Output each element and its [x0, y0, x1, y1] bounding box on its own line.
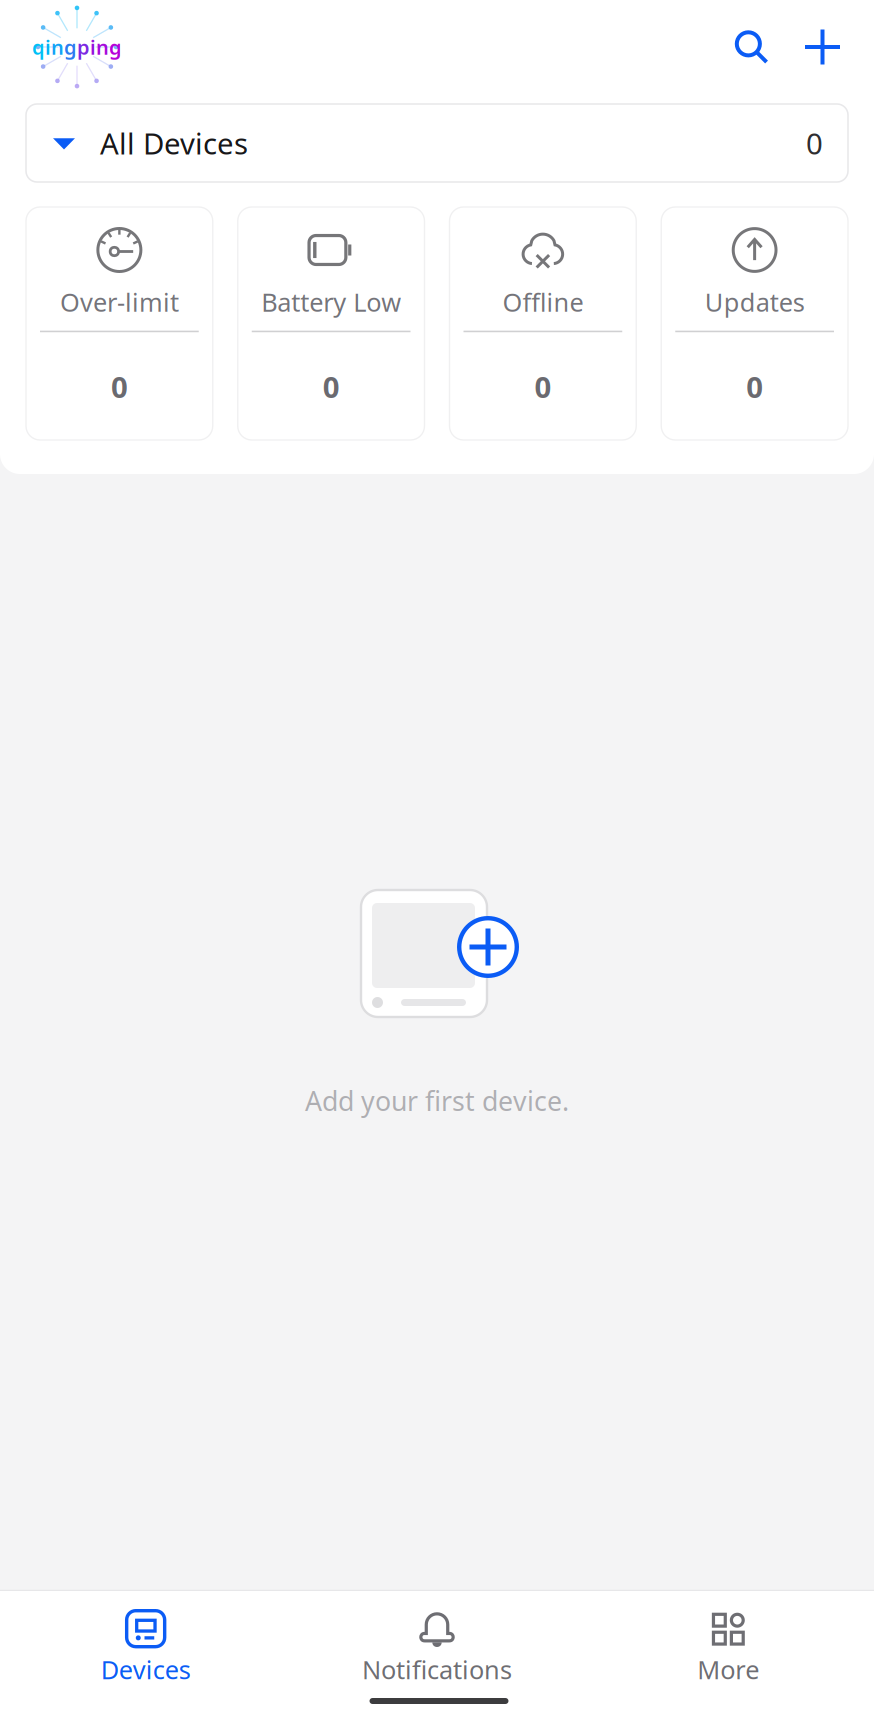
button[interactable]: Updates — [661, 207, 848, 440]
staticText: 0 — [534, 367, 551, 406]
staticText: i — [90, 34, 96, 60]
staticText: Add your first device. — [305, 1083, 569, 1118]
staticText: Devices — [101, 1653, 191, 1686]
staticText: Over-limit — [60, 285, 179, 319]
staticText: 0 — [746, 367, 763, 406]
staticText: Offline — [502, 285, 583, 319]
button[interactable]: All Devices — [26, 104, 848, 182]
staticText: p — [77, 34, 90, 60]
staticText: g — [109, 34, 122, 60]
staticText: g — [64, 34, 77, 60]
button[interactable]: More — [583, 1591, 874, 1682]
button[interactable]: Notifications — [291, 1591, 583, 1682]
staticText: 0 — [806, 123, 823, 162]
staticText: i — [45, 34, 51, 60]
staticText: Battery Low — [261, 285, 401, 319]
button[interactable]: Devices — [0, 1591, 291, 1682]
button[interactable]: Add device — [787, 9, 858, 84]
staticText: 0 — [111, 367, 128, 406]
staticText: q — [32, 34, 45, 60]
staticText: 0 — [323, 367, 340, 406]
button[interactable]: Battery Low — [238, 207, 425, 440]
staticText: n — [51, 34, 64, 60]
button[interactable]: Over-limit — [26, 207, 213, 440]
staticText: All Devices — [100, 123, 248, 162]
staticText: n — [96, 34, 109, 60]
staticText: More — [697, 1653, 759, 1686]
button[interactable]: Offline — [449, 207, 636, 440]
staticText: Updates — [705, 285, 805, 319]
staticText: Notifications — [362, 1653, 512, 1686]
button[interactable]: Search — [716, 9, 787, 84]
